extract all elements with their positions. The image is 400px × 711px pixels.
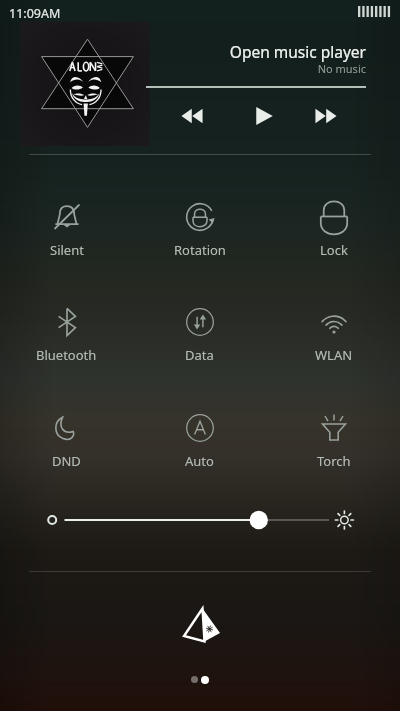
staticText: Torch xyxy=(317,452,351,470)
staticText: 11:09AM xyxy=(9,5,61,22)
button[interactable]: Silent xyxy=(0,171,133,263)
button[interactable]: Torch xyxy=(267,382,400,474)
button[interactable]: Page 1 xyxy=(191,676,198,683)
staticText: Bluetooth xyxy=(36,346,97,364)
button[interactable]: Open app drawer xyxy=(181,604,223,646)
staticText: Data xyxy=(185,346,214,364)
staticText: Open music player xyxy=(160,41,366,62)
button[interactable]: Auto xyxy=(133,382,266,474)
staticText: No music xyxy=(160,61,366,76)
button[interactable]: DND xyxy=(0,382,133,474)
staticText: DND xyxy=(52,452,81,470)
staticText: Lock xyxy=(320,241,348,259)
staticText: Auto xyxy=(185,452,214,470)
button[interactable]: WLAN xyxy=(267,276,400,368)
staticText: Rotation xyxy=(174,241,226,259)
button[interactable]: Play xyxy=(239,97,285,135)
button[interactable]: Page 2 xyxy=(201,676,209,684)
button[interactable]: Brightness xyxy=(36,504,364,536)
button[interactable]: Bluetooth xyxy=(0,276,133,368)
button[interactable]: Rotation xyxy=(133,171,266,263)
staticText: WLAN xyxy=(315,346,353,364)
button[interactable]: Data xyxy=(133,276,266,368)
button[interactable]: Previous xyxy=(169,97,215,135)
staticText: Silent xyxy=(50,241,84,259)
button[interactable]: Next xyxy=(303,97,349,135)
button[interactable]: Album art xyxy=(20,22,150,146)
button[interactable]: Lock xyxy=(267,171,400,263)
